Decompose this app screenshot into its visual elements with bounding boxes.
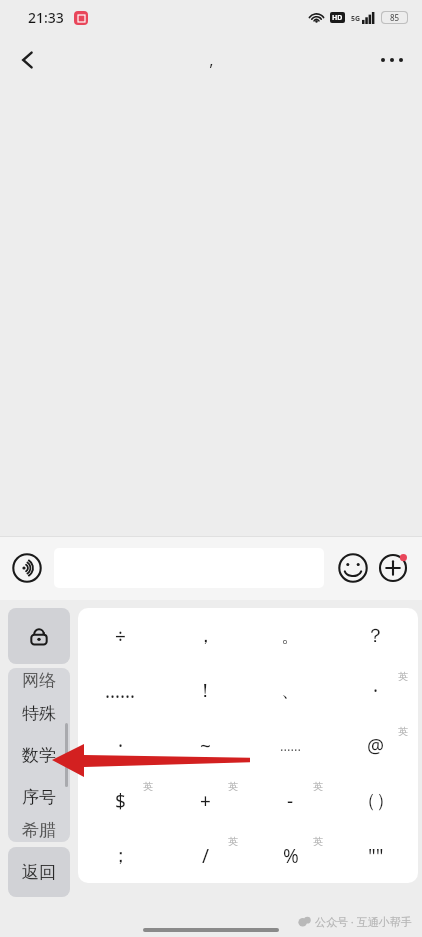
button[interactable]: $: [78, 773, 163, 828]
button[interactable]: ·: [78, 718, 163, 773]
staticText: $: [115, 788, 126, 814]
staticText: @: [367, 733, 385, 759]
staticText: ，: [196, 624, 215, 648]
button[interactable]: ÷: [78, 608, 163, 663]
button[interactable]: ·: [333, 663, 418, 718]
button[interactable]: ......: [248, 718, 333, 773]
button[interactable]: ？: [333, 608, 418, 663]
staticText: +: [200, 788, 211, 814]
button[interactable]: /: [163, 828, 248, 883]
staticText: 英: [398, 725, 408, 738]
button[interactable]: ！: [163, 663, 248, 718]
staticText: ？: [366, 624, 385, 648]
staticText: ；: [111, 844, 130, 868]
staticText: 、: [281, 679, 300, 703]
staticText: ！: [196, 679, 215, 703]
staticText: 数学: [22, 745, 56, 766]
button[interactable]: ~: [163, 718, 248, 773]
button[interactable]: 返回: [8, 847, 70, 897]
staticText: 英: [313, 780, 323, 793]
button[interactable]: ，: [163, 608, 248, 663]
staticText: 21:33: [28, 8, 64, 27]
button[interactable]: %: [248, 828, 333, 883]
staticText: 返回: [22, 862, 56, 883]
staticText: ·: [373, 678, 379, 704]
staticText: -: [287, 788, 294, 814]
button[interactable]: 特殊: [8, 692, 70, 734]
button[interactable]: 数学: [8, 734, 70, 776]
staticText: 序号: [22, 787, 56, 808]
staticText: ......: [280, 737, 301, 755]
staticText: 英: [313, 835, 323, 848]
staticText: %: [283, 843, 299, 869]
staticText: ·: [118, 733, 124, 759]
staticText: 英: [228, 780, 238, 793]
staticText: 。: [281, 624, 300, 648]
staticText: /: [202, 843, 210, 869]
button[interactable]: Back: [6, 38, 50, 82]
button[interactable]: （）: [333, 773, 418, 828]
staticText: "": [368, 843, 384, 869]
button[interactable]: 、: [248, 663, 333, 718]
button[interactable]: More functions: [374, 549, 412, 587]
staticText: 英: [228, 835, 238, 848]
staticText: ÷: [115, 623, 126, 649]
button[interactable]: 网络: [8, 668, 70, 692]
staticText: 英: [143, 780, 153, 793]
staticText: 公众号 · 互通小帮手: [315, 914, 412, 929]
button[interactable]: 希腊: [8, 818, 70, 842]
button[interactable]: 序号: [8, 776, 70, 818]
button[interactable]: Voice input: [10, 551, 44, 585]
button[interactable]: Lock symbols: [8, 608, 70, 664]
staticText: 5G: [351, 14, 361, 24]
button[interactable]: Emoji: [336, 551, 370, 585]
button[interactable]: 。: [248, 608, 333, 663]
staticText: 希腊: [22, 820, 56, 841]
button[interactable]: More options: [370, 38, 414, 82]
button[interactable]: -: [248, 773, 333, 828]
staticText: （）: [357, 789, 395, 813]
button[interactable]: +: [163, 773, 248, 828]
staticText: 网络: [22, 670, 56, 691]
staticText: 特殊: [22, 703, 56, 724]
button[interactable]: ；: [78, 828, 163, 883]
staticText: HD: [332, 13, 343, 23]
button[interactable]: @: [333, 718, 418, 773]
button[interactable]: "": [333, 828, 418, 883]
button[interactable]: ……: [78, 663, 163, 718]
staticText: ,: [209, 49, 214, 71]
staticText: 85: [390, 12, 400, 23]
staticText: 英: [398, 670, 408, 683]
staticText: ……: [105, 678, 136, 704]
staticText: ~: [200, 733, 211, 759]
